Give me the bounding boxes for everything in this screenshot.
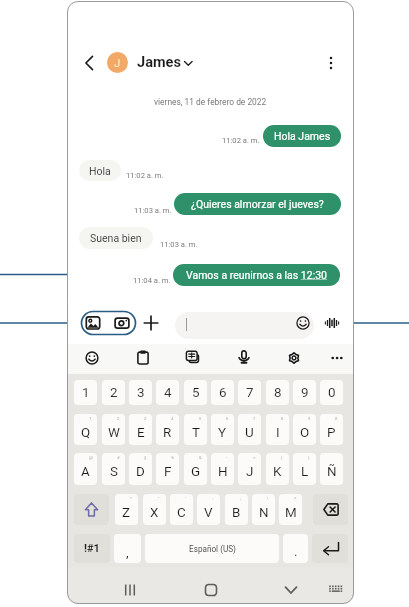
staticText: viernes, 11 de febrero de 2022	[154, 97, 267, 107]
staticText: V	[204, 505, 213, 521]
button[interactable]: Hola	[79, 160, 121, 181]
staticText: L	[301, 464, 309, 480]
button[interactable]: Vamos a reunirnos a las 12:30	[173, 264, 340, 286]
button[interactable]: Z	[115, 494, 138, 525]
button[interactable]: Home	[200, 579, 222, 601]
button[interactable]: More attachments	[140, 312, 162, 334]
button[interactable]	[175, 312, 314, 339]
staticText: R	[163, 425, 172, 441]
staticText: U	[245, 425, 254, 441]
staticText: 6	[219, 385, 227, 401]
staticText: B	[232, 505, 241, 521]
button[interactable]: Keyboard settings	[283, 347, 305, 369]
staticText: ;	[240, 496, 241, 501]
button[interactable]: T	[184, 414, 207, 445]
button[interactable]: Suena bien	[79, 227, 153, 249]
button[interactable]: Q	[74, 414, 97, 445]
button[interactable]: ,	[114, 534, 141, 563]
staticText: 11:02 a. m.	[126, 171, 164, 180]
button[interactable]: Voice input	[233, 347, 255, 369]
button[interactable]: Attach image	[82, 312, 104, 334]
button[interactable]: Emoji	[292, 312, 314, 334]
button[interactable]: 2	[102, 380, 125, 405]
button[interactable]: Español (US)	[145, 534, 279, 563]
button[interactable]: Shift	[74, 494, 109, 525]
button[interactable]: Recents	[119, 579, 141, 601]
button[interactable]: Back	[280, 579, 302, 601]
staticText: 8	[274, 385, 282, 401]
button[interactable]: J	[238, 453, 261, 485]
button[interactable]: 1	[74, 380, 97, 405]
button[interactable]: 9	[293, 380, 316, 405]
button[interactable]: P	[320, 414, 343, 445]
button[interactable]: F	[156, 453, 179, 485]
button[interactable]: E	[129, 414, 152, 445]
staticText: !#1	[84, 542, 100, 555]
button[interactable]: I	[266, 414, 289, 445]
button[interactable]: Enter	[312, 534, 348, 563]
staticText: 7	[246, 385, 254, 401]
button[interactable]: R	[156, 414, 179, 445]
button[interactable]: Emoji	[81, 347, 103, 369]
button[interactable]: Stickers	[182, 347, 204, 369]
button[interactable]: Contact photo	[107, 52, 128, 73]
button[interactable]: Voice message	[321, 312, 343, 334]
button[interactable]: X	[143, 494, 166, 525]
button[interactable]: Backspace	[313, 494, 348, 525]
button[interactable]: 7	[238, 380, 261, 405]
staticText: 11:02 a. m.	[222, 136, 260, 145]
button[interactable]: Camera	[111, 312, 133, 334]
staticText: G	[191, 464, 201, 480]
button[interactable]: ¿Quieres almorzar el jueves?	[174, 193, 341, 215]
button[interactable]: C	[170, 494, 193, 525]
staticText: Vamos a reunirnos a las 12:30	[186, 269, 327, 281]
button[interactable]: Back	[78, 52, 100, 74]
button[interactable]: L	[293, 453, 316, 485]
button[interactable]: 4	[156, 380, 179, 405]
button[interactable]: .	[283, 534, 308, 563]
button[interactable]: 0	[320, 380, 343, 405]
button[interactable]: B	[225, 494, 248, 525]
staticText: "	[158, 496, 160, 501]
button[interactable]: 6	[211, 380, 234, 405]
button[interactable]: !#1	[74, 534, 110, 563]
button[interactable]: V	[197, 494, 220, 525]
button[interactable]: Conversation options	[183, 57, 194, 68]
staticText: S	[110, 464, 118, 480]
button[interactable]: S	[102, 453, 125, 485]
staticText: Z	[122, 505, 131, 521]
button[interactable]: 3	[129, 380, 152, 405]
button[interactable]: W	[102, 414, 125, 445]
button[interactable]: G	[184, 453, 207, 485]
staticText: 2	[110, 385, 118, 401]
button[interactable]: A	[74, 453, 97, 485]
button[interactable]: Clipboard	[132, 347, 154, 369]
staticText: F	[164, 464, 172, 480]
button[interactable]: O	[293, 414, 316, 445]
staticText: 11:04 a. m.	[133, 276, 171, 285]
staticText: )	[308, 455, 310, 460]
staticText: W	[108, 425, 120, 441]
staticText: -	[226, 455, 228, 460]
staticText: 6	[226, 416, 229, 421]
button[interactable]: 5	[184, 380, 207, 405]
button[interactable]: More	[326, 347, 348, 369]
button[interactable]: 8	[266, 380, 289, 405]
button[interactable]: N	[252, 494, 275, 525]
button[interactable]: D	[129, 453, 152, 485]
button[interactable]: U	[238, 414, 261, 445]
button[interactable]: K	[266, 453, 289, 485]
button[interactable]: More options	[320, 52, 342, 74]
staticText: N	[259, 505, 269, 521]
staticText: 0	[335, 416, 338, 421]
button[interactable]: Y	[211, 414, 234, 445]
button[interactable]: Hide keyboard	[325, 579, 347, 601]
staticText: P	[327, 425, 336, 441]
button[interactable]: H	[211, 453, 234, 485]
button[interactable]: M	[279, 494, 302, 525]
staticText: 1	[89, 416, 92, 421]
staticText: ?	[294, 496, 296, 501]
button[interactable]: Ñ	[320, 453, 343, 485]
staticText: Hola James	[274, 130, 331, 142]
button[interactable]: Hola James	[263, 125, 341, 147]
